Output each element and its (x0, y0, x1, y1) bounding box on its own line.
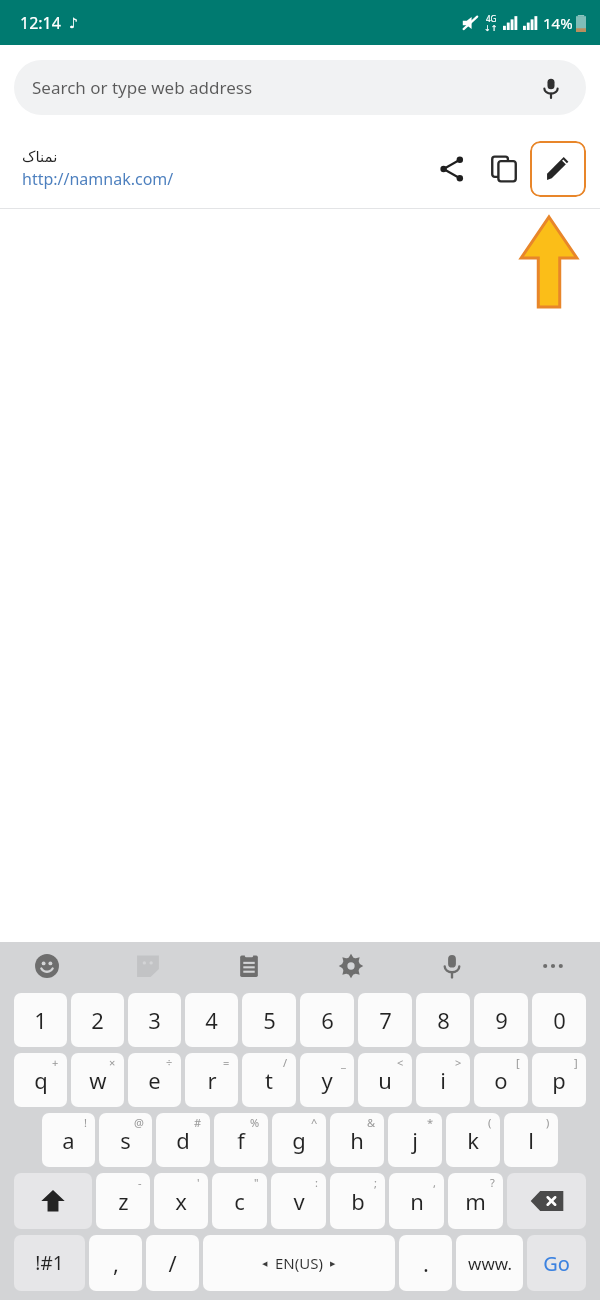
staticText: v (293, 1186, 305, 1216)
staticText: 6 (321, 1005, 334, 1035)
staticText: x (175, 1186, 187, 1216)
button[interactable]: t (242, 1053, 296, 1107)
staticText: ( (488, 1115, 492, 1130)
button[interactable]: n (389, 1173, 444, 1229)
button[interactable]: Edit (530, 141, 586, 197)
staticText: _ (341, 1055, 346, 1070)
button[interactable]: u (358, 1053, 412, 1107)
staticText: b (351, 1186, 365, 1216)
staticText: 5 (263, 1005, 276, 1035)
staticText: !#1 (35, 1250, 64, 1276)
button[interactable]: c (212, 1173, 267, 1229)
staticText: n (410, 1186, 424, 1216)
button[interactable]: j (388, 1113, 442, 1167)
button[interactable]: 1 (14, 993, 67, 1047)
button[interactable]: f (214, 1113, 268, 1167)
staticText: Go (543, 1250, 570, 1277)
staticText: w (89, 1065, 107, 1095)
button[interactable]: !#1 (14, 1235, 85, 1291)
button[interactable]: 2 (71, 993, 124, 1047)
staticText: y (321, 1065, 333, 1095)
button[interactable]: x (154, 1173, 208, 1229)
button[interactable]: i (416, 1053, 470, 1107)
staticText: > (455, 1055, 462, 1070)
staticText: : (315, 1175, 318, 1190)
button[interactable]: h (330, 1113, 384, 1167)
button[interactable]: , (89, 1235, 142, 1291)
button[interactable]: d (156, 1113, 210, 1167)
staticText: f (237, 1125, 245, 1155)
button[interactable]: Go (527, 1235, 586, 1291)
button[interactable]: Shift (14, 1173, 92, 1229)
button[interactable]: o (474, 1053, 528, 1107)
button[interactable]: Voice input (431, 945, 473, 987)
button[interactable]: 5 (242, 993, 296, 1047)
button[interactable]: More options (532, 945, 574, 987)
button[interactable]: Stickers (127, 945, 169, 987)
button[interactable]: y (300, 1053, 354, 1107)
staticText: a (62, 1125, 75, 1155)
button[interactable]: . (399, 1235, 452, 1291)
button[interactable]: Emoji (26, 945, 68, 987)
button[interactable]: w (71, 1053, 124, 1107)
button[interactable]: Search or type web address (14, 60, 586, 115)
button[interactable]: 0 (532, 993, 586, 1047)
button[interactable]: 9 (474, 993, 528, 1047)
staticText: # (194, 1115, 202, 1130)
staticText: ) (546, 1115, 550, 1130)
staticText: g (292, 1125, 306, 1155)
button[interactable]: 4 (185, 993, 238, 1047)
staticText: m (465, 1186, 486, 1216)
button[interactable]: m (448, 1173, 503, 1229)
staticText: ' (197, 1175, 200, 1190)
staticText: , (433, 1175, 436, 1190)
button[interactable]: a (42, 1113, 95, 1167)
staticText: نمناک (22, 148, 58, 165)
staticText: , (113, 1248, 119, 1278)
staticText: l (528, 1125, 534, 1155)
staticText: r (207, 1065, 217, 1095)
button[interactable]: www. (456, 1235, 523, 1291)
button[interactable]: 6 (300, 993, 354, 1047)
staticText: ] (574, 1055, 578, 1070)
button[interactable]: Copy (478, 143, 530, 195)
staticText: 3 (148, 1005, 161, 1035)
button[interactable]: 7 (358, 993, 412, 1047)
button[interactable]: e (128, 1053, 181, 1107)
button[interactable]: Settings (330, 945, 372, 987)
staticText: 2 (91, 1005, 104, 1035)
button[interactable]: Voice search (534, 71, 568, 105)
staticText: i (440, 1065, 446, 1095)
staticText: ^ (311, 1115, 318, 1130)
button[interactable]: k (446, 1113, 500, 1167)
staticText: < (397, 1055, 404, 1070)
button[interactable]: z (96, 1173, 150, 1229)
staticText: EN(US) (275, 1253, 323, 1273)
staticText: - (138, 1175, 142, 1190)
staticText: % (250, 1115, 260, 1130)
button[interactable]: 3 (128, 993, 181, 1047)
button[interactable]: p (532, 1053, 586, 1107)
button[interactable]: 8 (416, 993, 470, 1047)
button[interactable]: Share (426, 143, 478, 195)
button[interactable]: b (330, 1173, 385, 1229)
button[interactable]: q (14, 1053, 67, 1107)
staticText: 9 (495, 1005, 508, 1035)
staticText: 4 (205, 1005, 218, 1035)
staticText: c (234, 1186, 245, 1216)
button[interactable]: v (271, 1173, 326, 1229)
staticText: ♪ (69, 15, 78, 31)
button[interactable]: / (146, 1235, 199, 1291)
staticText: ? (490, 1175, 495, 1190)
staticText: p (552, 1065, 566, 1095)
button[interactable]: Clipboard (228, 945, 270, 987)
staticText: s (120, 1125, 131, 1155)
button[interactable]: g (272, 1113, 326, 1167)
staticText: ; (374, 1175, 377, 1190)
button[interactable]: r (185, 1053, 238, 1107)
button[interactable]: Space, EN(US) (203, 1235, 395, 1291)
button[interactable]: l (504, 1113, 558, 1167)
button[interactable]: Backspace (507, 1173, 586, 1229)
button[interactable]: s (99, 1113, 152, 1167)
staticText: ! (84, 1115, 87, 1130)
